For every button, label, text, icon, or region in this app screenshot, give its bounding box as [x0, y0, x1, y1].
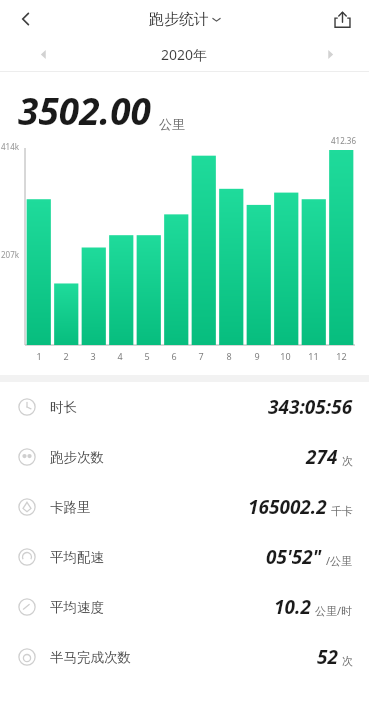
staticText: 3: [90, 350, 96, 362]
staticText: 10: [280, 350, 291, 362]
staticText: 次: [342, 654, 353, 668]
staticText: 414k: [1, 141, 19, 152]
button[interactable]: 跑步统计: [149, 10, 221, 29]
button[interactable]: Next year: [317, 41, 343, 67]
staticText: 卡路里: [50, 499, 91, 516]
staticText: 8: [226, 350, 232, 362]
staticText: 165002.2: [248, 494, 327, 520]
staticText: 半马完成次数: [50, 649, 131, 666]
button[interactable]: 跑步次数: [0, 432, 369, 482]
staticText: 05'52": [266, 544, 322, 570]
button[interactable]: Back: [8, 1, 44, 37]
staticText: 5: [144, 350, 150, 362]
staticText: 9: [254, 350, 260, 362]
staticText: 跑步统计: [149, 10, 209, 29]
staticText: 平均速度: [50, 599, 104, 616]
staticText: 2: [63, 350, 69, 362]
staticText: 207k: [1, 249, 19, 260]
staticText: 千卡: [331, 504, 353, 518]
staticText: 平均配速: [50, 549, 104, 566]
button[interactable]: 时长: [0, 382, 369, 432]
staticText: /公里: [326, 553, 353, 568]
button[interactable]: 平均配速: [0, 532, 369, 582]
staticText: 52: [317, 644, 338, 670]
staticText: 1: [36, 350, 42, 362]
staticText: 274: [306, 444, 338, 470]
staticText: 12: [336, 350, 347, 362]
staticText: 公里: [159, 116, 185, 132]
staticText: 7: [198, 350, 204, 362]
staticText: 时长: [50, 399, 77, 416]
staticText: 次: [342, 454, 353, 468]
button[interactable]: Previous year: [30, 41, 56, 67]
staticText: 4: [117, 350, 123, 362]
staticText: 10.2: [274, 594, 311, 620]
staticText: 3502.00: [18, 85, 151, 135]
button[interactable]: 卡路里: [0, 482, 369, 532]
staticText: 6: [171, 350, 177, 362]
staticText: 11: [308, 350, 319, 362]
staticText: 2020年: [161, 45, 208, 64]
button[interactable]: 半马完成次数: [0, 632, 369, 682]
staticText: 343:05:56: [268, 394, 353, 420]
staticText: 跑步次数: [50, 449, 104, 466]
button[interactable]: Share: [325, 2, 359, 36]
staticText: 公里/时: [315, 603, 353, 618]
button[interactable]: 平均速度: [0, 582, 369, 632]
staticText: 412.36: [331, 135, 357, 146]
